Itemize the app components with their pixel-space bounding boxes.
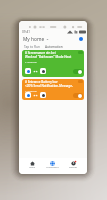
staticText: Home (29, 166, 35, 169)
button[interactable]: My home (23, 36, 49, 43)
button[interactable]: Action (40, 68, 46, 74)
button[interactable]: Home (28, 161, 36, 169)
staticText: Tap to Run (24, 45, 40, 49)
button[interactable]: Action (25, 68, 31, 74)
staticText: # Screensaver ein bei Weckruf "Bathroom"… (25, 51, 72, 59)
staticText: 09:41 (22, 30, 31, 34)
staticText: # Entrance Battery low <20% Send Notific… (25, 80, 73, 88)
button[interactable]: # Entrance Battery low <20% Send Notific… (22, 79, 84, 100)
button[interactable]: Account (79, 37, 83, 41)
button[interactable]: Automations (45, 161, 60, 169)
button[interactable]: More options (78, 51, 83, 54)
staticText: Settings (69, 166, 77, 169)
button[interactable]: Toggle automation (73, 69, 83, 74)
button[interactable]: Automation (45, 43, 63, 50)
button[interactable]: # Screensaver ein bei Weckruf "Bathroom"… (22, 50, 84, 77)
button[interactable]: Action (40, 92, 46, 98)
staticText: 2 Aktionen (25, 60, 38, 63)
button[interactable]: Tap to Run (24, 43, 40, 49)
staticText: 3 Aktionen (25, 89, 38, 92)
staticText: My home (23, 36, 45, 43)
staticText: Automations (46, 166, 59, 169)
button[interactable]: Toggle automation (73, 93, 83, 98)
button[interactable]: Settings (68, 161, 78, 169)
staticText: Automation (45, 45, 63, 49)
button[interactable]: Action (25, 92, 31, 98)
